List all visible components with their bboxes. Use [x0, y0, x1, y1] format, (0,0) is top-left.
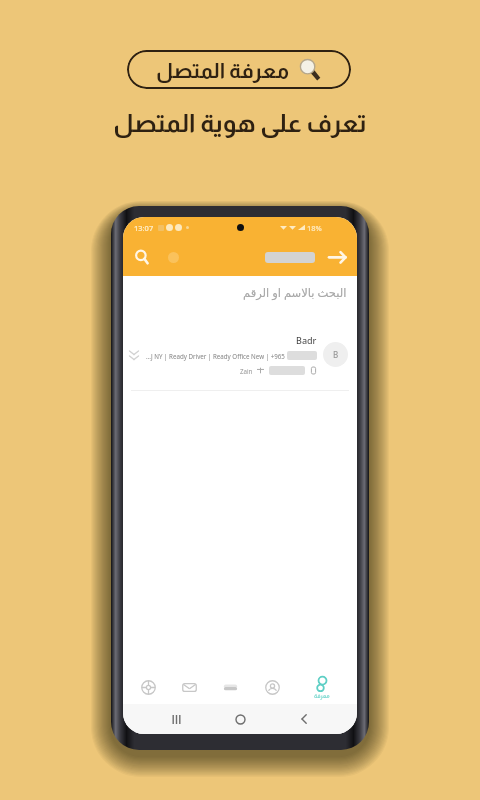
staticText: معرفة المتصل [156, 59, 289, 82]
button[interactable]: Messages [172, 662, 206, 704]
staticText: ...J NY | Ready Driver | Ready Office Ne… [146, 352, 285, 360]
button[interactable]: Calls [213, 662, 247, 704]
staticText: معرفة [314, 693, 330, 699]
staticText: تعرف على هوية المتصل [113, 109, 367, 137]
button[interactable]: Home [229, 708, 251, 730]
staticText: 13:07 [134, 223, 154, 233]
staticText: B [333, 349, 339, 360]
button[interactable]: Continue [327, 246, 349, 268]
button[interactable]: Recents [165, 708, 187, 730]
button[interactable]: Back [293, 708, 315, 730]
staticText: 18% [307, 223, 322, 233]
button[interactable]: Caller ID [304, 662, 338, 704]
button[interactable]: Explore [131, 662, 165, 704]
button[interactable]: Profile [255, 662, 289, 704]
button[interactable]: معرفة المتصل [127, 50, 351, 89]
button[interactable]: Badr [123, 327, 357, 381]
staticText: البحث بالاسم او الرقم [243, 285, 347, 301]
button[interactable]: Options [163, 247, 183, 267]
staticText: Zain [240, 367, 253, 375]
staticText: Badr [296, 334, 317, 346]
button[interactable]: Search [131, 246, 153, 268]
